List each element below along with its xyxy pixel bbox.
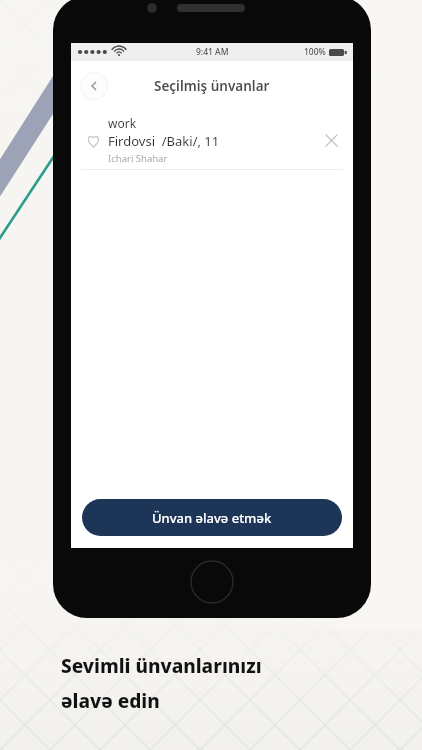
staticText: Ünvan əlavə etmək [152,509,272,527]
staticText: Ichari Shahar [108,152,168,165]
staticText: Sevimli ünvanlarınızı [61,653,262,679]
staticText: əlavə edin [61,688,160,714]
staticText: 100% [304,46,326,58]
button[interactable]: Favorite [80,127,106,153]
button[interactable]: Back [80,72,108,100]
staticText: 9:41 AM [196,46,229,58]
button[interactable]: Remove [319,128,343,152]
staticText: work [108,115,137,131]
staticText: Firdovsi /Baki/, 11 [108,132,220,150]
button[interactable]: Favorite [71,111,353,169]
staticText: Seçilmiş ünvanlar [154,77,270,95]
button[interactable]: Ünvan əlavə etmək [82,499,342,536]
